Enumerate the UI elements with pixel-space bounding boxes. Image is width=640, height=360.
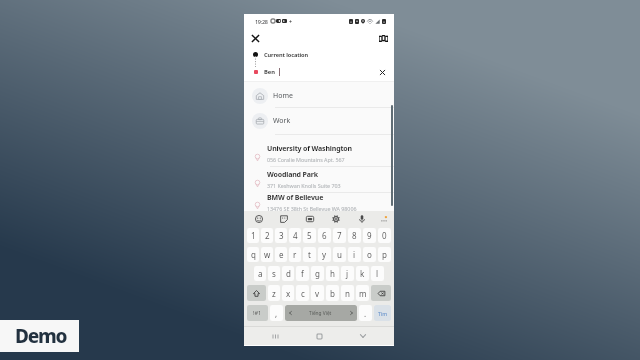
staticText: x <box>286 288 291 299</box>
staticText: o <box>367 249 372 260</box>
staticText: Woodland Park <box>267 170 318 180</box>
staticText: j <box>346 268 349 279</box>
staticText: !#1 <box>253 309 262 317</box>
button[interactable]: t <box>303 247 316 262</box>
staticText: m <box>359 288 367 299</box>
staticText: k <box>360 268 365 279</box>
button[interactable]: o <box>363 247 376 262</box>
staticText: 13476 SE 38th St Bellevue WA 98006 <box>267 205 357 211</box>
button[interactable]: g <box>311 266 324 281</box>
button[interactable]: j <box>341 266 354 281</box>
button[interactable]: 1 <box>247 228 259 243</box>
staticText: 19:28 <box>255 18 268 25</box>
staticText: 3 <box>279 230 284 241</box>
button[interactable]: Voice input <box>349 211 375 226</box>
staticText: . <box>364 308 367 319</box>
button[interactable]: Stickers <box>271 211 297 226</box>
staticText: University of Washington <box>267 144 352 154</box>
button[interactable]: u <box>333 247 346 262</box>
staticText: g <box>315 268 320 279</box>
button[interactable]: f <box>296 266 309 281</box>
button[interactable]: c <box>296 285 309 301</box>
staticText: r <box>293 249 297 260</box>
button[interactable]: More options <box>375 211 393 226</box>
button[interactable]: b <box>326 285 339 301</box>
button[interactable]: Clear text <box>376 66 388 78</box>
button[interactable]: Back <box>341 327 385 345</box>
button[interactable]: Settings <box>323 211 349 226</box>
staticText: 8 <box>352 230 357 241</box>
button[interactable]: l <box>371 266 384 281</box>
staticText: 4 <box>293 230 298 241</box>
button[interactable]: Woodland Park <box>251 167 394 192</box>
button[interactable]: d <box>282 266 294 281</box>
button[interactable]: e <box>275 247 287 262</box>
button[interactable]: Shift <box>247 285 266 301</box>
staticText: BMW of Bellevue <box>267 193 324 203</box>
button[interactable]: w <box>261 247 273 262</box>
staticText: l <box>376 268 379 279</box>
staticText: 2 <box>265 230 270 241</box>
button[interactable]: r <box>289 247 301 262</box>
button[interactable]: University of Washington <box>251 141 394 166</box>
button[interactable]: Tìm <box>374 305 391 321</box>
button[interactable]: s <box>268 266 280 281</box>
button[interactable]: q <box>247 247 259 262</box>
button[interactable]: . <box>359 305 372 321</box>
staticText: e <box>279 249 284 260</box>
staticText: w <box>264 249 271 260</box>
staticText: 371 Keshwan Knolls Suite 703 <box>267 182 341 189</box>
button[interactable]: 6 <box>318 228 331 243</box>
button[interactable]: n <box>341 285 354 301</box>
button[interactable]: Work <box>252 108 394 134</box>
button[interactable]: m <box>356 285 369 301</box>
button[interactable]: 8 <box>348 228 361 243</box>
button[interactable]: 0 <box>378 228 391 243</box>
staticText: , <box>275 308 278 319</box>
button[interactable]: 2 <box>261 228 273 243</box>
staticText: v <box>315 288 320 299</box>
staticText: i <box>353 249 356 260</box>
staticText: 1 <box>251 230 256 241</box>
button[interactable]: Clipboard <box>297 211 323 226</box>
button[interactable]: , <box>270 305 283 321</box>
staticText: Demo <box>15 323 67 349</box>
staticText: y <box>322 249 327 260</box>
staticText: n <box>345 288 350 299</box>
staticText: 7 <box>337 230 342 241</box>
staticText: 0 <box>382 230 387 241</box>
button[interactable]: y <box>318 247 331 262</box>
button[interactable]: 7 <box>333 228 346 243</box>
button[interactable]: Close <box>247 30 263 46</box>
button[interactable]: Current location <box>244 47 394 62</box>
button[interactable]: z <box>268 285 280 301</box>
staticText: t <box>308 249 311 260</box>
staticText: d <box>286 268 291 279</box>
staticText: Home <box>273 91 293 101</box>
staticText: p <box>382 249 387 260</box>
button[interactable]: BMW of Bellevue <box>251 193 394 211</box>
button[interactable]: k <box>356 266 369 281</box>
button[interactable]: v <box>311 285 324 301</box>
button[interactable]: 3 <box>275 228 287 243</box>
staticText: u <box>337 249 342 260</box>
button[interactable]: Show map <box>375 30 391 46</box>
staticText: 056 Coralie Mountains Apt. 567 <box>267 156 345 163</box>
button[interactable]: Recent apps <box>253 327 297 345</box>
staticText: Tìm <box>378 310 388 317</box>
button[interactable]: !#1 <box>247 305 268 321</box>
staticText: b <box>330 288 335 299</box>
button[interactable]: p <box>378 247 391 262</box>
button[interactable]: Tiếng Việt <box>285 305 357 321</box>
button[interactable]: 5 <box>303 228 316 243</box>
button[interactable]: 9 <box>363 228 376 243</box>
button[interactable]: Backspace <box>371 285 391 301</box>
button[interactable]: Home <box>297 327 341 345</box>
button[interactable]: a <box>254 266 266 281</box>
button[interactable]: i <box>348 247 361 262</box>
button[interactable]: Emoji <box>246 211 271 226</box>
button[interactable]: x <box>282 285 294 301</box>
button[interactable]: h <box>326 266 339 281</box>
button[interactable]: 4 <box>289 228 301 243</box>
button[interactable]: Home <box>252 84 394 107</box>
